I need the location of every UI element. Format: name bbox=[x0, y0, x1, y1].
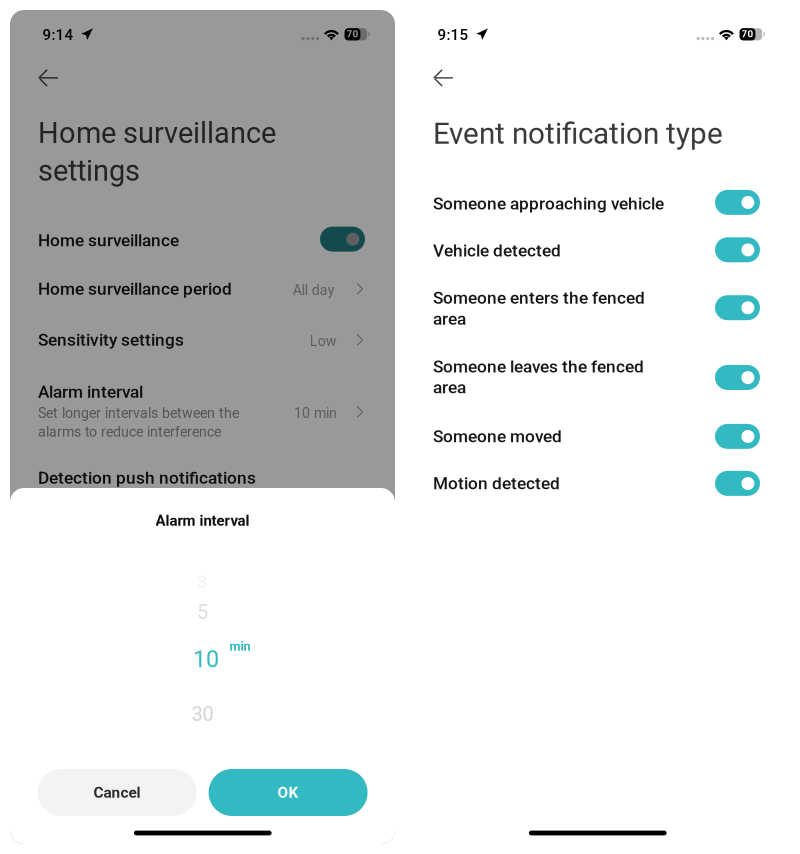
button[interactable]: OK bbox=[209, 769, 368, 816]
staticText: Motion detected bbox=[433, 473, 560, 493]
staticText: Alarm interval bbox=[155, 512, 249, 529]
staticText: Alarm interval bbox=[38, 382, 143, 402]
staticText: OK bbox=[278, 783, 299, 801]
staticText: min bbox=[229, 639, 250, 654]
staticText: 10 bbox=[193, 645, 219, 673]
button[interactable]: Back bbox=[29, 60, 66, 96]
staticText: All day bbox=[293, 282, 335, 299]
button[interactable]: Home surveillance bbox=[10, 220, 395, 260]
staticText: 9:14 bbox=[42, 26, 73, 44]
staticText: Set longer intervals between the alarms … bbox=[38, 405, 239, 440]
staticText: Someone leaves the fenced area bbox=[433, 356, 644, 397]
button[interactable]: Someone approaching vehicle bbox=[405, 177, 790, 222]
button[interactable]: Motion detected bbox=[405, 458, 790, 503]
staticText: 10 min bbox=[294, 405, 337, 421]
button[interactable]: Home surveillance period bbox=[10, 272, 395, 308]
staticText: Someone approaching vehicle bbox=[433, 194, 664, 214]
button[interactable]: Detection push notifications bbox=[10, 460, 395, 496]
staticText: 70 bbox=[347, 28, 359, 40]
staticText: 70 bbox=[742, 28, 754, 40]
staticText: Sensitivity settings bbox=[38, 330, 184, 350]
staticText: 9:15 bbox=[437, 26, 468, 44]
button[interactable]: Someone moved bbox=[405, 411, 790, 456]
staticText: Someone moved bbox=[433, 426, 562, 446]
staticText: Someone enters the fenced area bbox=[433, 288, 645, 329]
button[interactable]: Sensitivity settings bbox=[10, 323, 395, 359]
button[interactable]: Cancel bbox=[38, 769, 197, 816]
staticText: Home surveillance period bbox=[38, 279, 232, 299]
button[interactable]: Alarm interval bbox=[10, 374, 395, 454]
staticText: 3 bbox=[197, 571, 207, 592]
staticText: Cancel bbox=[94, 783, 141, 801]
staticText: Home surveillance bbox=[38, 230, 179, 250]
staticText: Home surveillance settings bbox=[38, 116, 276, 188]
staticText: 30 bbox=[191, 702, 213, 726]
staticText: Vehicle detected bbox=[433, 241, 561, 261]
button[interactable]: Back bbox=[424, 60, 461, 96]
staticText: Low bbox=[310, 333, 337, 350]
staticText: Event notification type bbox=[433, 116, 723, 151]
button[interactable]: Someone leaves the fenced area bbox=[405, 341, 790, 407]
button[interactable]: Someone enters the fenced area bbox=[405, 272, 790, 338]
button[interactable]: Vehicle detected bbox=[405, 224, 790, 269]
staticText: 5 bbox=[197, 600, 208, 624]
staticText: Detection push notifications bbox=[38, 468, 256, 488]
